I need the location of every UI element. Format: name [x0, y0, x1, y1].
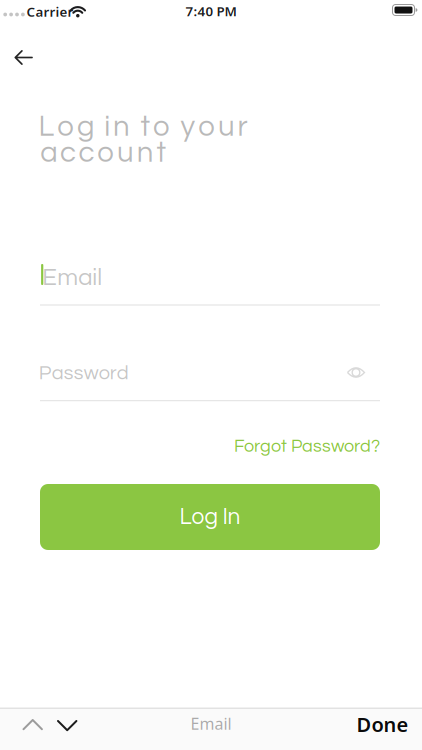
staticText: i: [104, 112, 110, 142]
button[interactable]: Back: [2, 36, 46, 80]
staticText: Carrier: [26, 3, 73, 20]
button[interactable]: Done: [356, 711, 408, 738]
staticText: o: [198, 112, 215, 142]
staticText: Done: [356, 711, 408, 738]
staticText: u: [218, 112, 235, 142]
staticText: o: [97, 138, 114, 168]
button[interactable]: Log In: [40, 484, 380, 550]
button[interactable]: Next field: [49, 708, 85, 750]
staticText: 7:40 PM: [185, 2, 236, 20]
staticText: Password: [39, 363, 129, 383]
staticText: c: [60, 138, 76, 168]
button[interactable]: Show password: [336, 352, 376, 392]
staticText: y: [180, 112, 195, 142]
staticText: Log In: [179, 505, 240, 529]
staticText: Forgot Password?: [234, 437, 380, 455]
staticText: t: [140, 112, 150, 142]
staticText: r: [238, 112, 248, 142]
staticText: Email: [190, 713, 231, 734]
staticText: g: [77, 112, 94, 142]
staticText: n: [113, 112, 130, 142]
staticText: t: [156, 138, 166, 168]
staticText: a: [40, 138, 57, 168]
staticText: n: [137, 138, 154, 168]
staticText: Email: [42, 265, 102, 290]
staticText: L: [38, 112, 54, 142]
staticText: o: [57, 112, 74, 142]
staticText: u: [117, 138, 134, 168]
staticText: o: [153, 112, 170, 142]
button[interactable]: Forgot Password?: [234, 437, 380, 455]
staticText: c: [79, 138, 95, 168]
button[interactable]: Previous field: [15, 708, 51, 750]
